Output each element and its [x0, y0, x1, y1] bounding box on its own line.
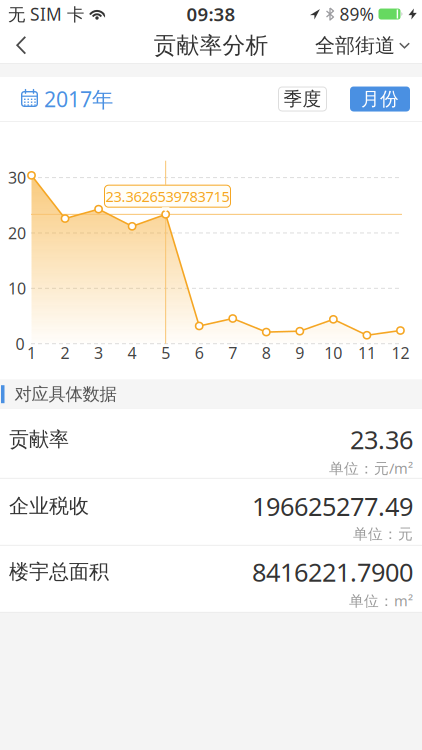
staticText: 单位：元 [353, 525, 413, 543]
staticText: 单位：m² [349, 591, 413, 610]
staticText: 单位：元/m² [329, 458, 413, 478]
staticText: 2017年 [44, 85, 113, 113]
staticText: 23.3626539783715 [105, 186, 229, 206]
staticText: 8 [262, 342, 271, 363]
button[interactable]: 全部街道 [315, 25, 422, 66]
staticText: 贡献率 [9, 427, 69, 452]
staticText: 6 [195, 342, 204, 363]
staticText: 23.36 [350, 423, 413, 456]
staticText: 12 [391, 342, 409, 363]
staticText: 196625277.49 [252, 489, 413, 523]
staticText: 30 [8, 167, 26, 188]
staticText: 月份 [361, 87, 399, 110]
staticText: 09:38 [186, 2, 235, 26]
staticText: 全部街道 [315, 33, 395, 58]
staticText: 7 [228, 342, 237, 363]
staticText: 5 [161, 342, 170, 363]
staticText: 11 [358, 342, 376, 363]
staticText: 3 [94, 342, 103, 363]
staticText: 89% [339, 2, 373, 25]
staticText: 无 SIM 卡 [8, 2, 84, 25]
button[interactable]: 季度 [278, 86, 327, 111]
staticText: 9 [295, 342, 304, 363]
button[interactable]: 2017年 [0, 85, 113, 113]
staticText: 贡献率分析 [153, 32, 268, 59]
staticText: 楼宇总面积 [9, 560, 109, 584]
button[interactable]: Back [0, 28, 27, 63]
staticText: 1 [27, 342, 36, 363]
staticText: 企业税收 [9, 494, 89, 518]
staticText: 0 [15, 333, 24, 354]
staticText: 2 [60, 342, 69, 363]
staticText: 20 [8, 222, 26, 243]
staticText: 10 [8, 278, 26, 299]
staticText: 4 [128, 342, 137, 363]
staticText: 对应具体数据 [14, 384, 116, 405]
staticText: 10 [324, 342, 342, 363]
staticText: 8416221.7900 [252, 555, 413, 589]
button[interactable]: 月份 [350, 86, 410, 111]
staticText: 季度 [283, 87, 321, 110]
